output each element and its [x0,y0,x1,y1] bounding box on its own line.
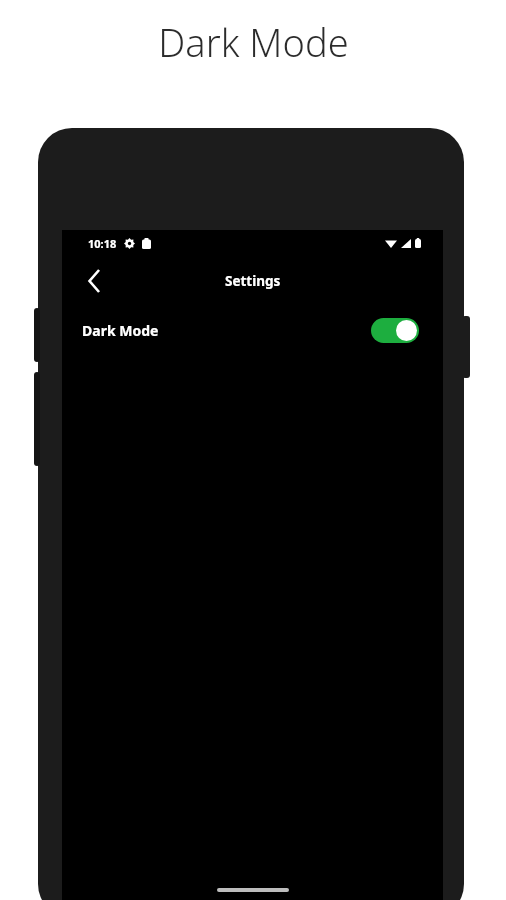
staticText: Dark Mode [82,321,159,340]
button[interactable]: Dark Mode toggle, on [371,318,419,343]
staticText: Dark Mode [158,16,349,68]
staticText: 10:18 [88,236,117,251]
staticText: Settings [225,272,281,290]
button[interactable]: Dark Mode [62,306,443,354]
button[interactable]: Back [76,263,112,299]
